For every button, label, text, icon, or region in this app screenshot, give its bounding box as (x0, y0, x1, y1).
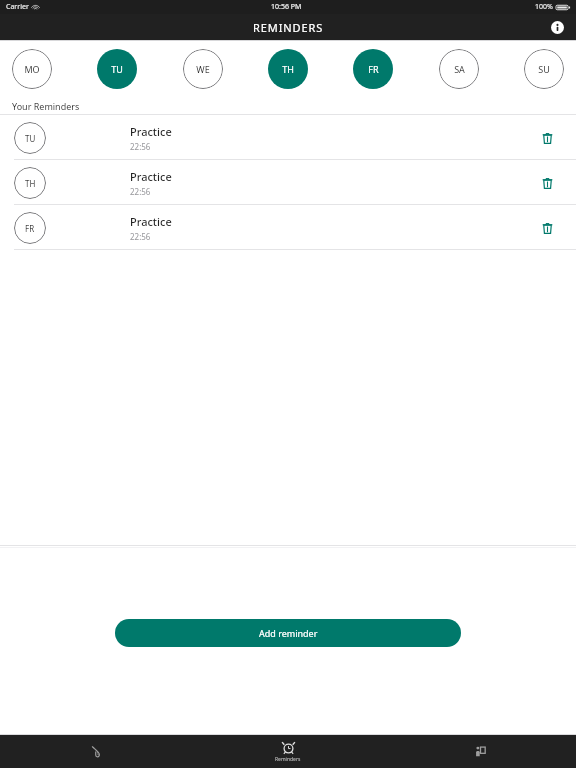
staticText: FR (368, 63, 379, 75)
button[interactable]: Info (546, 16, 568, 38)
staticText: FR (25, 223, 35, 234)
staticText: Carrier (6, 2, 29, 12)
staticText: 10:56 PM (271, 2, 302, 12)
staticText: Add reminder (259, 627, 318, 639)
staticText: TH (25, 178, 36, 189)
button[interactable]: TH (268, 49, 308, 89)
button[interactable]: Delete reminder (532, 213, 562, 243)
button[interactable]: MO (12, 49, 52, 89)
button[interactable]: Reminders (192, 735, 384, 768)
staticText: REMINDERS (253, 20, 324, 35)
staticText: Practice (130, 214, 172, 229)
button[interactable]: Profile (384, 735, 576, 768)
button[interactable]: Delete reminder (532, 168, 562, 198)
button[interactable]: TH (0, 160, 576, 205)
staticText: SU (538, 63, 550, 75)
button[interactable]: Instrument (0, 735, 192, 768)
button[interactable]: FR (0, 205, 576, 250)
staticText: Reminders (275, 756, 301, 763)
button[interactable]: TU (97, 49, 137, 89)
button[interactable]: Add reminder (115, 619, 461, 647)
staticText: SA (454, 63, 465, 75)
staticText: 100% (535, 2, 553, 12)
button[interactable]: TU (0, 115, 576, 160)
staticText: TU (111, 63, 123, 75)
button[interactable]: SA (439, 49, 479, 89)
staticText: Practice (130, 124, 172, 139)
button[interactable]: SU (524, 49, 564, 89)
staticText: Practice (130, 169, 172, 184)
staticText: 22:56 (130, 231, 151, 242)
staticText: MO (24, 63, 40, 75)
staticText: WE (196, 63, 210, 75)
button[interactable]: Delete reminder (532, 123, 562, 153)
button[interactable]: WE (183, 49, 223, 89)
staticText: Your Reminders (12, 100, 80, 112)
staticText: 22:56 (130, 141, 151, 152)
staticText: 22:56 (130, 186, 151, 197)
staticText: TU (25, 133, 36, 144)
button[interactable]: FR (353, 49, 393, 89)
staticText: TH (282, 63, 294, 75)
